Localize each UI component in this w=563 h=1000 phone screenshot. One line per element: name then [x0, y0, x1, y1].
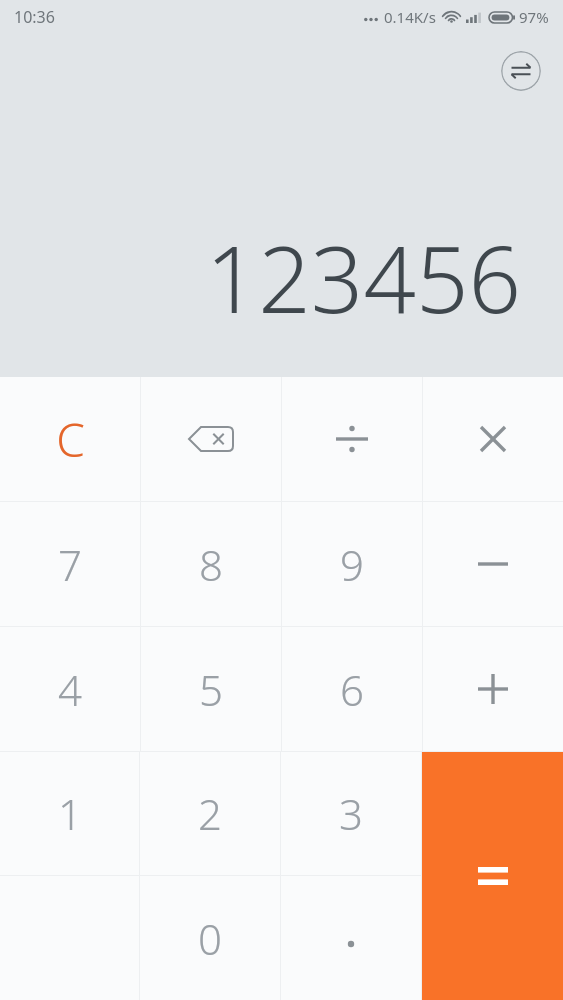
button[interactable]: 6	[282, 627, 422, 751]
staticText: 5	[199, 661, 223, 718]
staticText: 2	[198, 785, 222, 842]
staticText: 4	[58, 661, 82, 718]
button[interactable]: 4	[0, 627, 140, 751]
staticText: C	[56, 408, 85, 471]
button[interactable]: Minus	[423, 502, 563, 626]
staticText: 97%	[519, 7, 549, 27]
button[interactable]: Plus	[423, 627, 563, 751]
button[interactable]: Decimal point	[281, 876, 421, 1000]
staticText: 6	[340, 661, 364, 718]
button[interactable]: 1	[0, 752, 139, 875]
button[interactable]: 3	[281, 752, 421, 875]
staticText: 3	[339, 785, 363, 842]
button[interactable]: Divide	[282, 377, 422, 501]
button[interactable]: 8	[141, 502, 281, 626]
button[interactable]: Unit converter	[501, 51, 541, 91]
button[interactable]: 0	[140, 876, 280, 1000]
staticText: 8	[199, 536, 223, 593]
staticText: 1	[58, 785, 82, 842]
button[interactable]: Multiply	[423, 377, 563, 501]
button[interactable]: Backspace	[141, 377, 281, 501]
staticText: 7	[58, 536, 82, 593]
button[interactable]: 5	[141, 627, 281, 751]
button[interactable]: Equals	[422, 752, 563, 1000]
button[interactable]: 7	[0, 502, 140, 626]
staticText: 10:36	[14, 6, 55, 28]
button[interactable]: 2	[140, 752, 280, 875]
button[interactable]: C	[0, 377, 140, 501]
staticText: 123456	[205, 215, 521, 340]
button[interactable]: 9	[282, 502, 422, 626]
staticText: 9	[340, 536, 364, 593]
staticText: 0.14K/s	[384, 7, 436, 27]
staticText: 0	[198, 910, 222, 967]
